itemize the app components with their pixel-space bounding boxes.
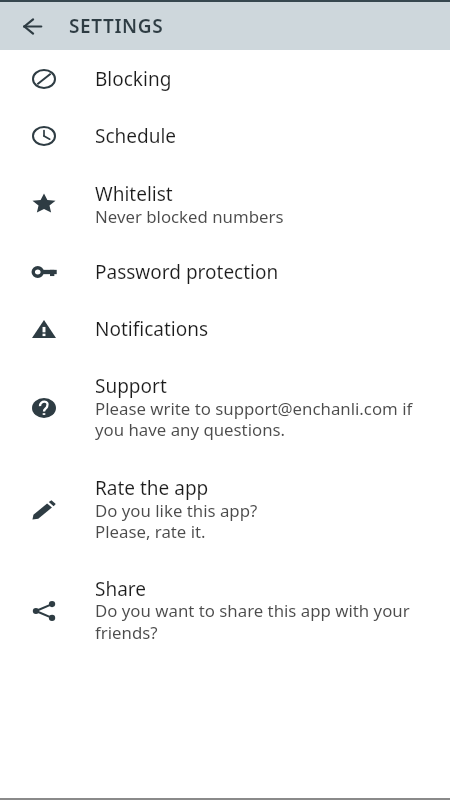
staticText: Do you like this app? bbox=[95, 499, 258, 522]
button[interactable]: Notifications bbox=[0, 306, 450, 363]
button[interactable]: Support bbox=[0, 363, 450, 466]
staticText: Never blocked numbers bbox=[95, 205, 284, 228]
button[interactable]: Blocking bbox=[0, 50, 450, 113]
staticText: Share bbox=[95, 576, 147, 602]
button[interactable]: Whitelist bbox=[0, 171, 450, 251]
staticText: Blocking bbox=[95, 66, 172, 92]
staticText: Whitelist bbox=[95, 181, 173, 207]
button[interactable]: Schedule bbox=[0, 113, 450, 171]
staticText: Support bbox=[95, 373, 167, 399]
staticText: Schedule bbox=[95, 123, 177, 149]
staticText: Rate the app bbox=[95, 475, 209, 501]
staticText: you have any questions. bbox=[95, 418, 286, 441]
button[interactable]: Password protection bbox=[0, 250, 450, 306]
staticText: Please write to support@enchanli.com if bbox=[95, 397, 413, 420]
button[interactable]: Rate the app bbox=[0, 466, 450, 566]
staticText: Please, rate it. bbox=[95, 520, 206, 543]
staticText: Do you want to share this app with your bbox=[95, 599, 410, 622]
staticText: Notifications bbox=[95, 316, 209, 342]
staticText: friends? bbox=[95, 621, 158, 644]
button[interactable]: Share bbox=[0, 566, 450, 666]
staticText: SETTINGS bbox=[69, 13, 164, 39]
staticText: Password protection bbox=[95, 259, 279, 285]
button[interactable]: Back bbox=[8, 2, 56, 50]
